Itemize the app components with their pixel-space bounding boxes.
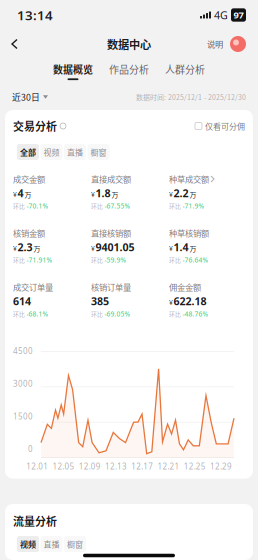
staticText: 1.8 xyxy=(95,186,110,200)
staticText: 数据时间: 2025/12/1 - 2025/12/30 xyxy=(136,92,246,102)
staticText: 环比 xyxy=(13,256,25,264)
staticText: 614 xyxy=(13,294,31,308)
staticText: ¥ xyxy=(91,190,95,199)
staticText: -71.91% xyxy=(26,256,52,264)
staticText: 直播 xyxy=(67,146,83,158)
staticText: 12.01 xyxy=(26,461,48,472)
staticText: 环比 xyxy=(169,202,181,210)
staticText: 4500 xyxy=(13,346,33,356)
staticText: 直接核销额 xyxy=(91,227,131,239)
staticText: 97 xyxy=(233,9,243,21)
staticText: 种草成交额 xyxy=(169,173,209,185)
staticText: 橱窗 xyxy=(90,146,106,158)
staticText: 万 xyxy=(190,243,197,253)
staticText: 全部 xyxy=(20,146,36,158)
button[interactable]: 视频 xyxy=(17,536,39,552)
staticText: 12.21 xyxy=(157,461,179,472)
staticText: -69.05% xyxy=(104,310,130,318)
staticText: -70.1% xyxy=(26,202,48,210)
button[interactable]: 人群分析 xyxy=(165,62,205,80)
staticText: ¥ xyxy=(169,244,173,253)
staticText: 环比 xyxy=(91,256,103,264)
staticText: ¥ xyxy=(91,244,95,253)
staticText: 2.3 xyxy=(17,240,32,254)
button[interactable]: 橱窗 xyxy=(87,144,109,160)
staticText: 1.4 xyxy=(173,240,188,254)
staticText: 数据中心 xyxy=(107,36,151,52)
button[interactable]: 说明 xyxy=(207,32,223,56)
staticText: 作品分析 xyxy=(109,62,149,76)
staticText: 12.13 xyxy=(105,461,127,472)
staticText: 2.2 xyxy=(173,186,188,200)
button[interactable]: 全部 xyxy=(17,144,39,160)
staticText: -67.55% xyxy=(104,202,130,210)
staticText: 13:14 xyxy=(17,6,53,24)
staticText: 环比 xyxy=(13,202,25,210)
staticText: -48.76% xyxy=(182,310,208,318)
staticText: 环比 xyxy=(169,310,181,318)
staticText: 4 xyxy=(17,186,23,200)
staticText: 流量分析 xyxy=(13,513,57,529)
staticText: 数据概览 xyxy=(53,62,93,76)
staticText: 核销订单量 xyxy=(91,281,131,293)
staticText: 12.09 xyxy=(79,461,101,472)
staticText: -59.9% xyxy=(104,256,126,264)
staticText: -68.1% xyxy=(26,310,48,318)
staticText: 橱窗 xyxy=(67,538,83,550)
staticText: 12.17 xyxy=(131,461,153,472)
staticText: 种草核销额 xyxy=(169,227,209,239)
staticText: -76.64% xyxy=(182,256,208,264)
staticText: 成交金额 xyxy=(13,173,45,185)
staticText: 3000 xyxy=(13,378,33,389)
staticText: 核销金额 xyxy=(13,227,45,239)
button[interactable]: Back xyxy=(12,32,34,56)
staticText: 4G xyxy=(214,8,228,22)
staticText: 直播 xyxy=(43,538,59,550)
staticText: 万 xyxy=(25,189,32,199)
staticText: 1500 xyxy=(13,411,33,422)
staticText: 环比 xyxy=(91,202,103,210)
button[interactable]: Account xyxy=(223,36,246,52)
staticText: 视频 xyxy=(43,146,59,158)
staticText: 622.18 xyxy=(173,294,206,308)
staticText: ¥ xyxy=(13,190,17,199)
staticText: 0 xyxy=(28,444,33,454)
staticText: 环比 xyxy=(91,310,103,318)
staticText: 万 xyxy=(34,243,41,253)
button[interactable]: 橱窗 xyxy=(64,536,86,552)
button[interactable]: 近30日 xyxy=(12,91,48,103)
staticText: 仅看可分佣 xyxy=(205,120,245,132)
button[interactable]: 数据概览 xyxy=(53,62,93,80)
button[interactable]: 直播 xyxy=(40,536,62,552)
staticText: 佣金金额 xyxy=(169,281,201,293)
staticText: 12.29 xyxy=(210,461,232,472)
staticText: 视频 xyxy=(20,538,36,550)
staticText: 环比 xyxy=(169,256,181,264)
button[interactable]: 视频 xyxy=(40,144,62,160)
staticText: 12.25 xyxy=(184,461,206,472)
staticText: 385 xyxy=(91,294,109,308)
staticText: 人群分析 xyxy=(165,62,205,76)
staticText: ¥ xyxy=(169,190,173,199)
staticText: ¥ xyxy=(13,244,17,253)
staticText: ¥ xyxy=(169,298,173,307)
staticText: 直接成交额 xyxy=(91,173,131,185)
button[interactable]: 仅看可分佣 xyxy=(195,120,245,132)
staticText: 说明 xyxy=(207,38,223,50)
staticText: 成交订单量 xyxy=(13,281,53,293)
button[interactable]: 直播 xyxy=(64,144,86,160)
staticText: -71.9% xyxy=(182,202,204,210)
staticText: 交易分析 xyxy=(13,118,57,134)
staticText: 环比 xyxy=(13,310,25,318)
staticText: 9401.05 xyxy=(95,240,134,254)
staticText: 近30日 xyxy=(12,91,40,103)
staticText: 万 xyxy=(112,189,119,199)
staticText: 万 xyxy=(190,189,197,199)
button[interactable]: 作品分析 xyxy=(109,62,149,80)
staticText: 12.05 xyxy=(52,461,74,472)
